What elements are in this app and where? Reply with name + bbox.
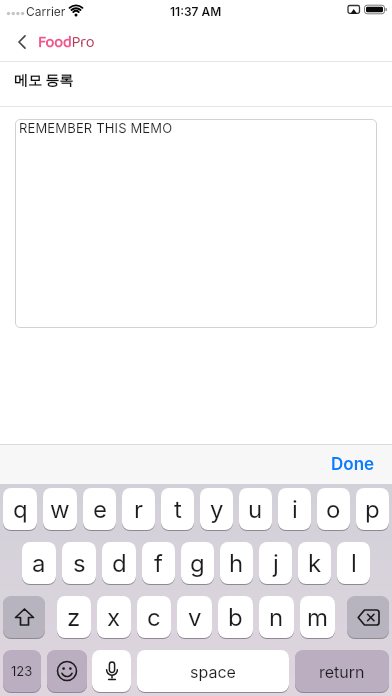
button[interactable]: r	[122, 488, 155, 531]
button[interactable]: space	[137, 650, 289, 693]
staticText: i	[292, 495, 298, 524]
button[interactable]: v	[177, 596, 212, 639]
button[interactable]: t	[161, 488, 194, 531]
staticText: w	[50, 495, 70, 524]
button[interactable]: q	[3, 488, 37, 531]
staticText: u	[248, 495, 263, 524]
staticText: z	[67, 603, 81, 632]
staticText: f	[154, 549, 163, 578]
staticText: e	[93, 495, 107, 524]
button[interactable]	[47, 650, 87, 693]
staticText: x	[107, 603, 121, 632]
button[interactable]: z	[57, 596, 91, 639]
staticText: l	[351, 549, 357, 578]
button[interactable]: l	[337, 542, 370, 585]
button[interactable]: REMEMBER THIS MEMO	[15, 119, 377, 328]
staticText: y	[210, 495, 224, 524]
button[interactable]: 123	[3, 650, 41, 693]
button[interactable]: c	[137, 596, 171, 639]
button[interactable]: x	[97, 596, 131, 639]
staticText: k	[308, 549, 322, 578]
button[interactable]: u	[239, 488, 272, 531]
button[interactable]: h	[220, 542, 253, 585]
staticText: p	[365, 495, 380, 524]
staticText: n	[269, 603, 284, 632]
button[interactable]: m	[300, 596, 335, 639]
button[interactable]: d	[102, 542, 136, 585]
button[interactable]: k	[298, 542, 331, 585]
staticText: s	[73, 549, 86, 578]
button[interactable]: i	[278, 488, 311, 531]
button[interactable]: p	[356, 488, 389, 531]
staticText: g	[190, 549, 205, 578]
staticText: o	[326, 495, 341, 524]
staticText: a	[32, 549, 46, 578]
staticText: v	[188, 603, 202, 632]
button[interactable]: f	[142, 542, 175, 585]
staticText: Done	[331, 454, 375, 475]
button[interactable]: return	[295, 650, 389, 693]
staticText: h	[229, 549, 244, 578]
staticText: t	[174, 495, 182, 524]
staticText: FoodPro	[38, 30, 95, 56]
button[interactable]: Done	[331, 445, 392, 484]
button[interactable]: y	[200, 488, 233, 531]
button[interactable]: o	[317, 488, 350, 531]
button[interactable]	[347, 596, 389, 639]
staticText: Carrier	[26, 4, 66, 19]
staticText: 123	[11, 663, 33, 679]
button[interactable]: b	[218, 596, 253, 639]
button[interactable]: w	[43, 488, 77, 531]
staticText: c	[147, 603, 161, 632]
staticText: q	[13, 495, 28, 524]
staticText: r	[134, 495, 144, 524]
staticText: 11:37 AM	[170, 4, 222, 19]
button[interactable]: g	[181, 542, 214, 585]
staticText: m	[307, 603, 329, 632]
staticText: d	[112, 549, 127, 578]
staticText: space	[190, 662, 236, 681]
button[interactable]	[0, 24, 34, 61]
staticText: return	[319, 662, 365, 681]
button[interactable]: a	[22, 542, 56, 585]
staticText: REMEMBER THIS MEMO	[19, 120, 173, 136]
staticText: b	[228, 603, 243, 632]
staticText: j	[273, 549, 279, 578]
button[interactable]: j	[259, 542, 292, 585]
button[interactable]	[92, 650, 131, 693]
staticText: 메모 등록	[14, 71, 74, 89]
button[interactable]	[3, 596, 45, 639]
button[interactable]: s	[62, 542, 96, 585]
button[interactable]: n	[259, 596, 294, 639]
button[interactable]: e	[83, 488, 116, 531]
